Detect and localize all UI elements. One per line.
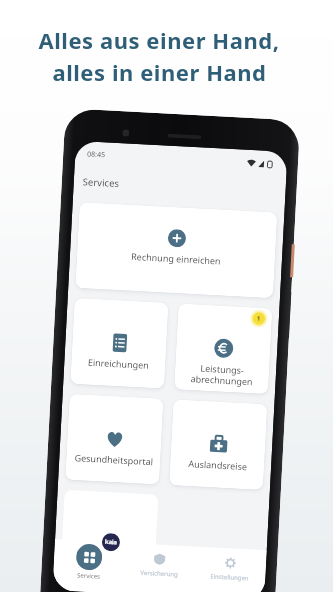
staticText: Leistungs- abrechnungen (190, 361, 253, 387)
staticText: Alles aus einer Hand, (38, 25, 280, 55)
staticText: Einreichungen (87, 356, 150, 371)
button[interactable]: kaia logo (101, 533, 120, 552)
staticText: Auslandsreise (188, 457, 247, 472)
staticText: alles in einer Hand (52, 57, 267, 87)
button[interactable]: Rechnung einreichen (75, 202, 277, 298)
staticText: kaia (105, 538, 117, 546)
staticText: Rechnung einreichen (131, 250, 221, 266)
button[interactable]: Services (52, 539, 125, 592)
staticText: 1 (257, 314, 261, 323)
button[interactable]: Versicherung (122, 543, 196, 592)
button[interactable] (60, 490, 158, 580)
staticText: Services (77, 571, 100, 581)
staticText: Einstellungen (210, 572, 249, 582)
button[interactable]: Einstellungen (193, 547, 267, 592)
button[interactable]: Auslandsreise (169, 399, 267, 490)
staticText: 08:45 (87, 149, 105, 160)
button[interactable]: Gesundheitsportal (65, 394, 164, 485)
staticText: Gesundheitsportal (74, 451, 153, 467)
button[interactable]: Leistungs- abrechnungen (174, 303, 272, 394)
button[interactable]: Einreichungen (70, 298, 169, 389)
staticText: Versicherung (140, 569, 179, 579)
staticText: Services (82, 175, 120, 190)
